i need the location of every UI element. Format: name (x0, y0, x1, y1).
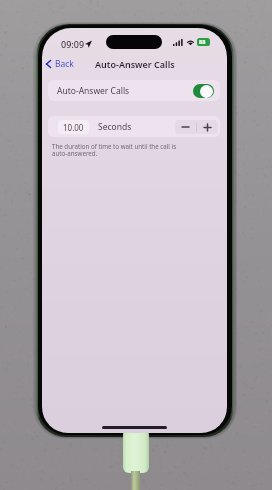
staticText: The duration of time to wait until the c… (52, 142, 177, 158)
button[interactable]: Back (44, 56, 77, 71)
staticText: 10.00 (63, 122, 84, 133)
button[interactable]: 10.00 (58, 120, 89, 134)
staticText: Seconds (98, 121, 132, 133)
staticText: 88 (199, 38, 206, 46)
button[interactable]: Decrease (175, 120, 196, 134)
button[interactable]: Increase (197, 120, 218, 134)
staticText: Auto-Answer Calls (57, 85, 130, 97)
staticText: 09:09 (61, 38, 85, 50)
button[interactable]: Auto-Answer Calls (48, 80, 220, 101)
staticText: Auto-Answer Calls (95, 58, 175, 70)
staticText: Back (55, 58, 74, 70)
